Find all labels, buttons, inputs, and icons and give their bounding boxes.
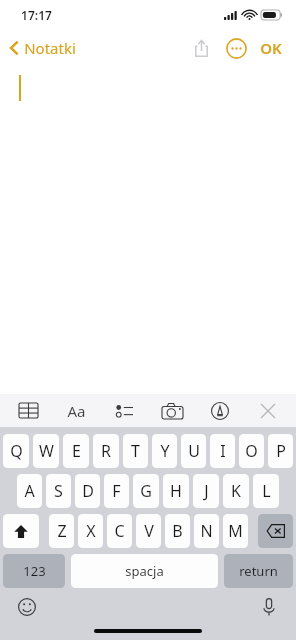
staticText: P xyxy=(276,440,286,462)
button[interactable]: OK xyxy=(255,33,287,63)
button[interactable]: O xyxy=(239,434,264,468)
button[interactable]: Insert table xyxy=(8,394,48,427)
staticText: W xyxy=(39,440,54,462)
button[interactable]: Share xyxy=(186,33,216,63)
button[interactable]: Z xyxy=(49,514,74,548)
staticText: X xyxy=(86,520,96,542)
button[interactable]: Q xyxy=(3,434,29,468)
staticText: Z xyxy=(57,520,67,542)
staticText: J xyxy=(204,480,209,502)
staticText: N xyxy=(200,520,213,542)
button[interactable]: H xyxy=(163,474,189,508)
button[interactable]: Camera xyxy=(152,394,192,427)
button[interactable]: return xyxy=(224,554,293,588)
staticText: Aa xyxy=(67,401,86,421)
button[interactable]: V xyxy=(136,514,161,548)
button[interactable]: Hide keyboard xyxy=(248,394,288,427)
button[interactable]: Y xyxy=(152,434,177,468)
staticText: T xyxy=(131,440,140,462)
button[interactable]: E xyxy=(63,434,89,468)
button[interactable]: L xyxy=(253,474,279,508)
button[interactable]: C xyxy=(107,514,132,548)
staticText: Notatki xyxy=(24,38,76,58)
staticText: 17:17 xyxy=(21,7,52,23)
button[interactable]: I xyxy=(210,434,235,468)
button[interactable]: A xyxy=(17,474,42,508)
button[interactable]: P xyxy=(268,434,293,468)
staticText: K xyxy=(231,480,241,502)
button[interactable]: Markup xyxy=(200,394,240,427)
button[interactable]: 123 xyxy=(3,554,65,588)
button[interactable]: More options xyxy=(221,33,251,63)
button[interactable]: Checklist xyxy=(104,394,144,427)
button[interactable]: X xyxy=(78,514,103,548)
staticText: S xyxy=(54,480,63,502)
button[interactable] xyxy=(0,66,296,394)
button[interactable]: J xyxy=(193,474,219,508)
staticText: V xyxy=(144,520,154,542)
staticText: C xyxy=(114,520,125,542)
staticText: H xyxy=(170,480,182,502)
button[interactable]: S xyxy=(46,474,71,508)
button[interactable]: N xyxy=(194,514,219,548)
staticText: O xyxy=(245,440,258,462)
button[interactable]: Backspace xyxy=(258,514,293,548)
button[interactable]: R xyxy=(93,434,119,468)
button[interactable]: W xyxy=(33,434,59,468)
staticText: Q xyxy=(10,440,23,462)
button[interactable]: Emoji xyxy=(12,592,42,622)
staticText: I xyxy=(220,440,226,462)
staticText: Y xyxy=(160,440,170,462)
button[interactable]: D xyxy=(75,474,100,508)
staticText: return xyxy=(239,562,278,580)
staticText: E xyxy=(72,440,81,462)
staticText: D xyxy=(82,480,94,502)
button[interactable]: Text format xyxy=(56,394,96,427)
button[interactable]: U xyxy=(181,434,206,468)
button[interactable]: K xyxy=(223,474,249,508)
staticText: F xyxy=(112,480,121,502)
staticText: M xyxy=(228,520,243,542)
button[interactable]: F xyxy=(104,474,129,508)
button[interactable]: spacja xyxy=(71,554,218,588)
button[interactable]: G xyxy=(133,474,159,508)
button[interactable]: Shift xyxy=(3,514,39,548)
button[interactable]: M xyxy=(223,514,248,548)
staticText: OK xyxy=(260,38,282,58)
staticText: L xyxy=(262,480,271,502)
staticText: 123 xyxy=(23,562,46,580)
staticText: spacja xyxy=(125,562,164,580)
staticText: B xyxy=(172,520,183,542)
button[interactable]: Notatki xyxy=(6,34,80,62)
button[interactable]: T xyxy=(123,434,148,468)
button[interactable]: B xyxy=(165,514,190,548)
staticText: A xyxy=(24,480,35,502)
staticText: G xyxy=(140,480,152,502)
staticText: U xyxy=(188,440,200,462)
staticText: R xyxy=(101,440,111,462)
button[interactable]: Dictate xyxy=(254,592,284,622)
